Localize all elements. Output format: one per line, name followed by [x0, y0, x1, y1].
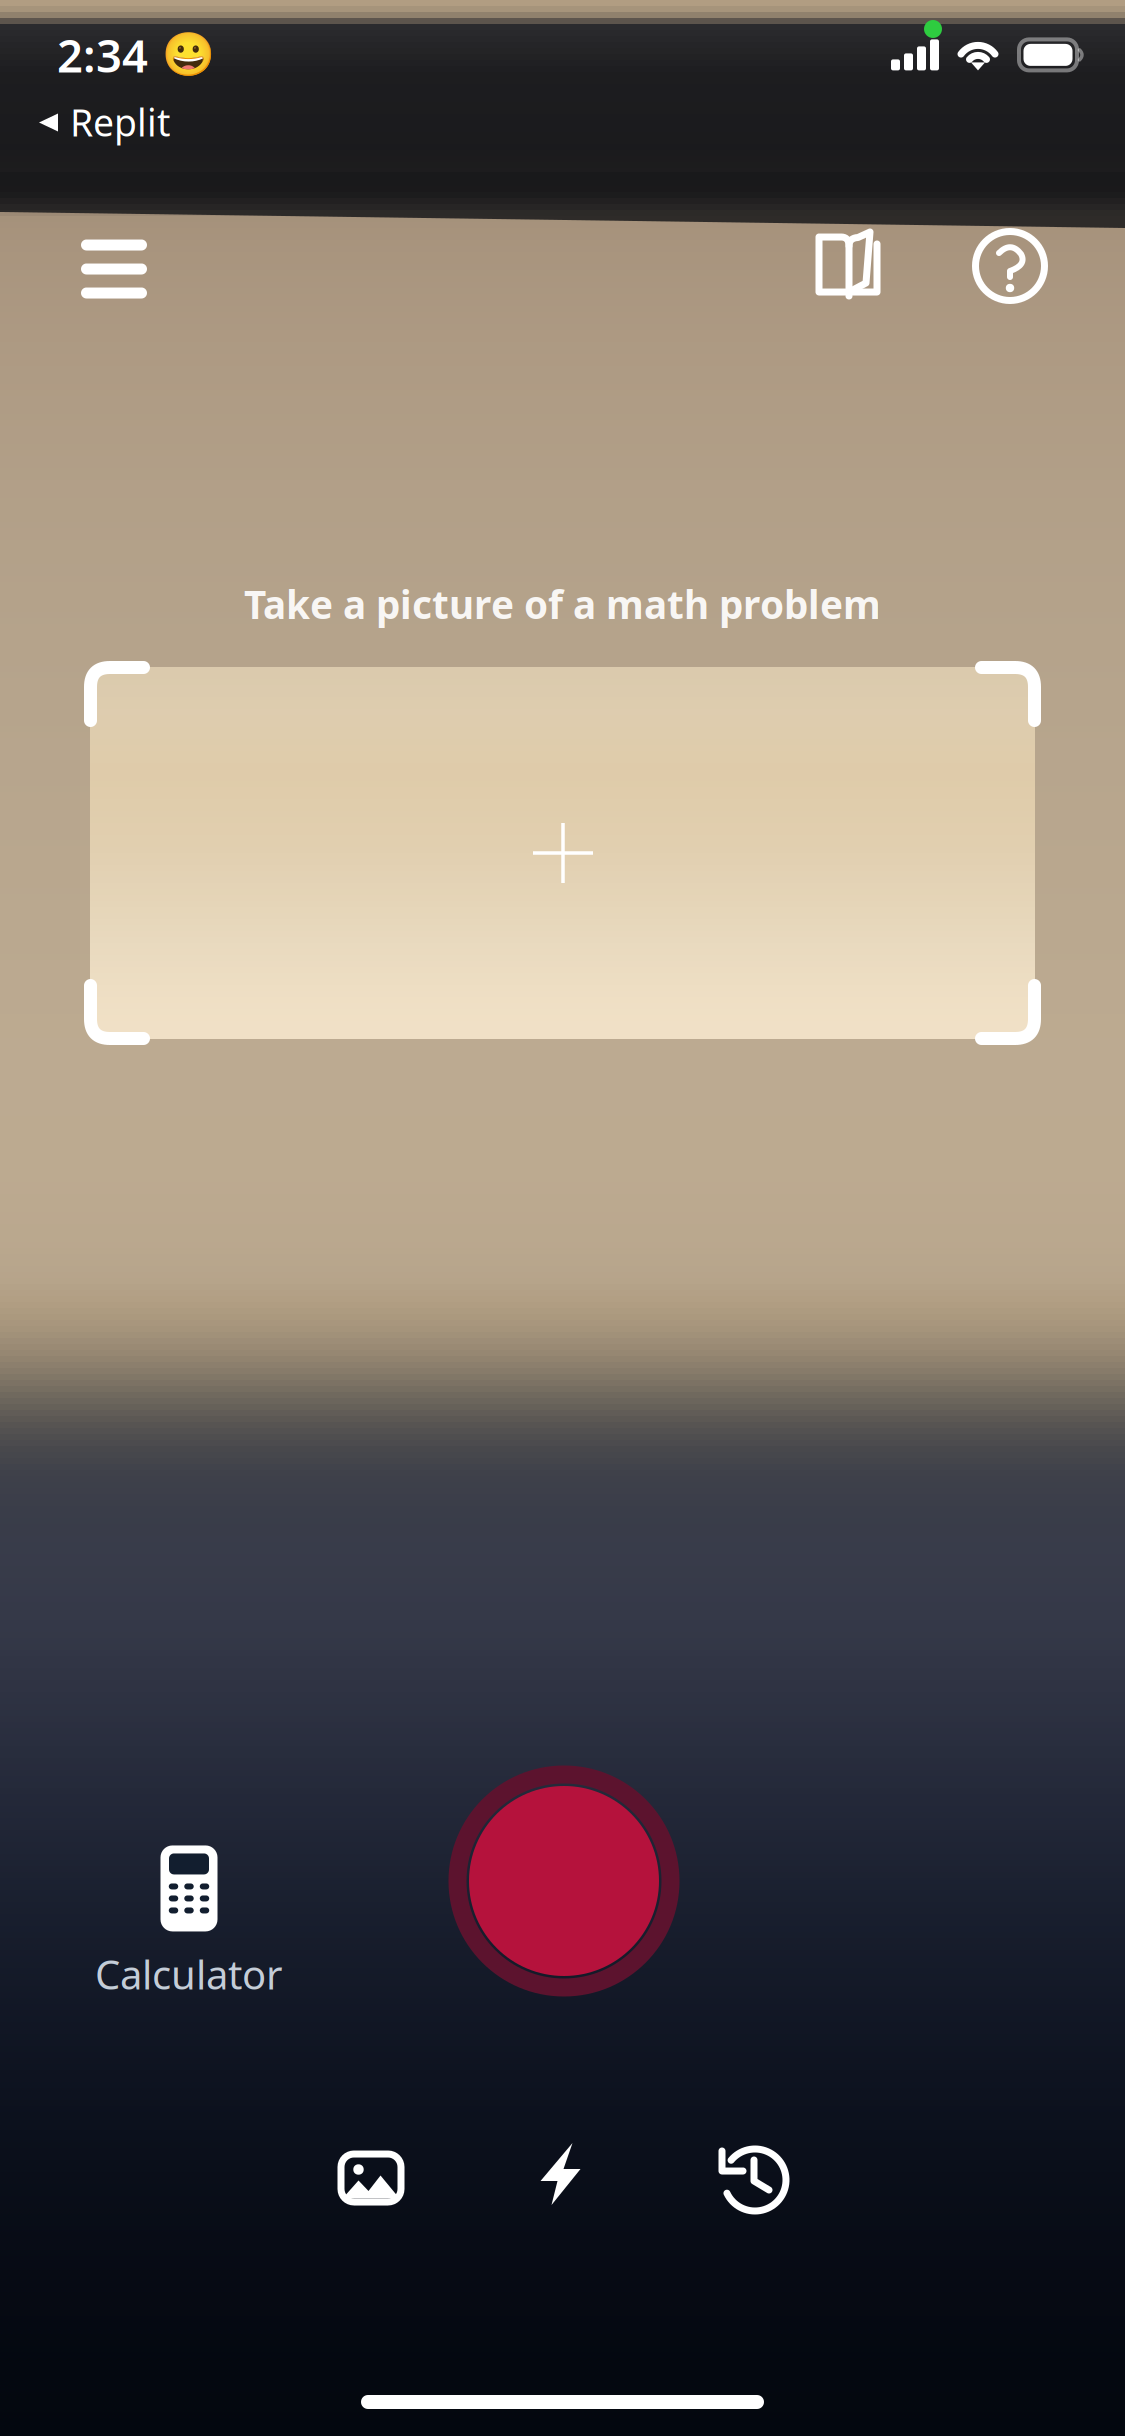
button[interactable]: Textbook solutions: [795, 208, 905, 318]
button[interactable]: Take picture: [444, 1761, 684, 2001]
button[interactable]: History: [695, 2125, 815, 2235]
button[interactable]: Menu: [59, 214, 169, 324]
staticText: Take a picture of a math problem: [244, 578, 881, 630]
button[interactable]: Help: [955, 211, 1065, 321]
button[interactable]: Flash: [500, 2119, 620, 2229]
button[interactable]: Replit: [38, 100, 258, 144]
button[interactable]: Calculator: [49, 1843, 329, 2003]
button[interactable]: Gallery: [311, 2123, 431, 2233]
staticText: Calculator: [95, 1947, 283, 2000]
staticText: 😀: [162, 30, 215, 79]
staticText: Replit: [70, 97, 170, 147]
staticText: 2:34: [57, 25, 148, 85]
